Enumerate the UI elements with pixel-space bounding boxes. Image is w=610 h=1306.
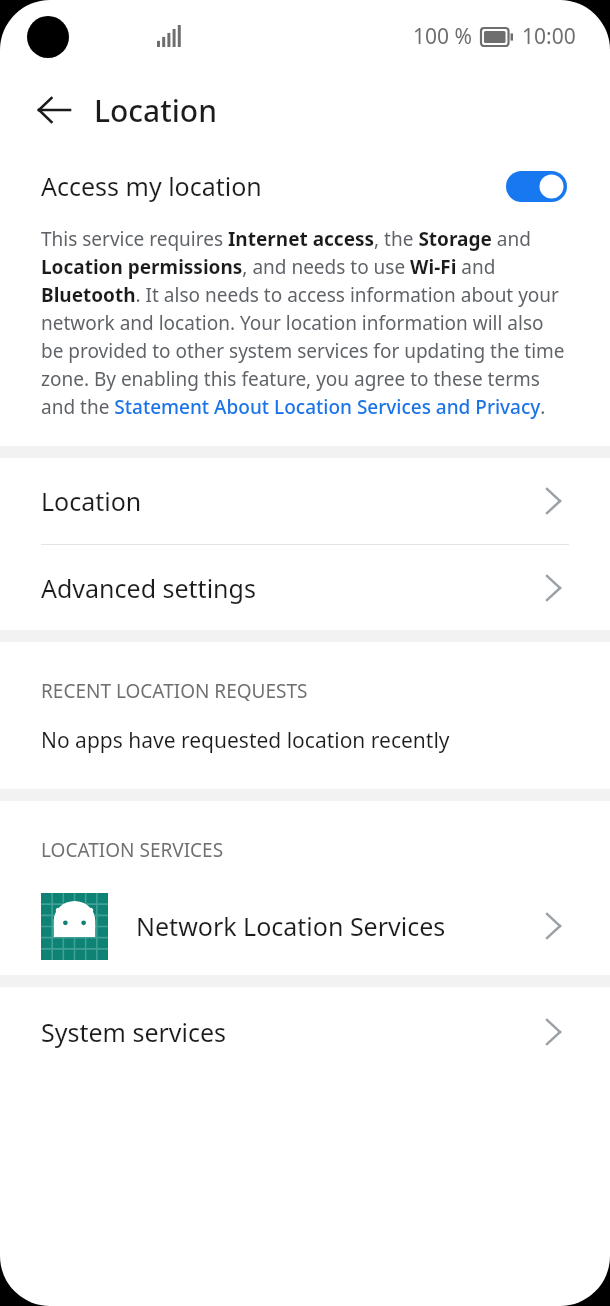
staticText: No apps have requested location recently xyxy=(41,726,450,755)
button[interactable]: Back xyxy=(26,82,82,138)
button[interactable]: Open xyxy=(536,571,570,605)
button[interactable]: Location xyxy=(0,458,610,544)
staticText: LOCATION SERVICES xyxy=(41,837,224,863)
staticText: 10:00 xyxy=(522,22,576,51)
staticText: Location xyxy=(94,90,217,131)
button[interactable]: Open xyxy=(536,484,570,518)
staticText: Access my location xyxy=(41,169,262,203)
button[interactable]: Network Location Services xyxy=(0,877,610,975)
staticText: Network Location Services xyxy=(136,909,446,943)
staticText: 100 % xyxy=(413,22,472,51)
button[interactable]: Advanced settings xyxy=(0,545,610,630)
button[interactable]: Open xyxy=(536,909,570,943)
button[interactable]: Access my location xyxy=(0,148,610,224)
button[interactable]: System services xyxy=(0,987,610,1077)
button[interactable]: Open xyxy=(536,1015,570,1049)
staticText: Location xyxy=(41,484,142,518)
staticText: This service requires Internet access, t… xyxy=(41,226,570,420)
staticText: RECENT LOCATION REQUESTS xyxy=(41,678,308,704)
staticText: Advanced settings xyxy=(41,571,256,605)
staticText: System services xyxy=(41,1015,227,1049)
